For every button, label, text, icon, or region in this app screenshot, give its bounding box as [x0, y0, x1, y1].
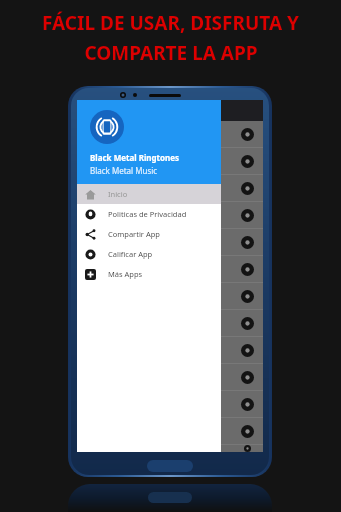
- staticText: FÁCIL DE USAR, DISFRUTA Y: [42, 10, 299, 36]
- button[interactable]: [77, 418, 263, 444]
- staticText: Calificar App: [108, 249, 153, 259]
- button[interactable]: Politicas de Privacidad: [77, 204, 221, 224]
- button[interactable]: [77, 310, 263, 336]
- button[interactable]: [77, 148, 263, 174]
- button[interactable]: Más Apps: [77, 264, 221, 284]
- button[interactable]: Black Metal Llamadas: [77, 445, 263, 452]
- staticText: Black Metal Doom -: [85, 237, 154, 247]
- button[interactable]: [77, 391, 263, 417]
- button[interactable]: [77, 175, 263, 201]
- staticText: Black Metal Ringtones: [90, 152, 180, 163]
- button[interactable]: Calificar App: [77, 244, 221, 264]
- button[interactable]: Home: [147, 460, 193, 472]
- button[interactable]: [77, 364, 263, 390]
- staticText: Inicio: [108, 189, 128, 199]
- button[interactable]: Black Metal Terror: [77, 121, 263, 147]
- staticText: Black Metal Music: [90, 165, 158, 176]
- button[interactable]: [77, 283, 263, 309]
- button[interactable]: Black Metal Doom -: [77, 229, 263, 255]
- button[interactable]: [77, 202, 263, 228]
- button[interactable]: [77, 337, 263, 363]
- staticText: COMPARTE LA APP: [84, 40, 258, 66]
- staticText: Politicas de Privacidad: [108, 209, 187, 219]
- button[interactable]: [77, 256, 263, 282]
- button[interactable]: Inicio: [77, 184, 221, 204]
- button[interactable]: Compartir App: [77, 224, 221, 244]
- staticText: Compartir App: [108, 229, 160, 239]
- staticText: Black Metal Terror: [85, 129, 149, 139]
- staticText: Más Apps: [108, 269, 143, 279]
